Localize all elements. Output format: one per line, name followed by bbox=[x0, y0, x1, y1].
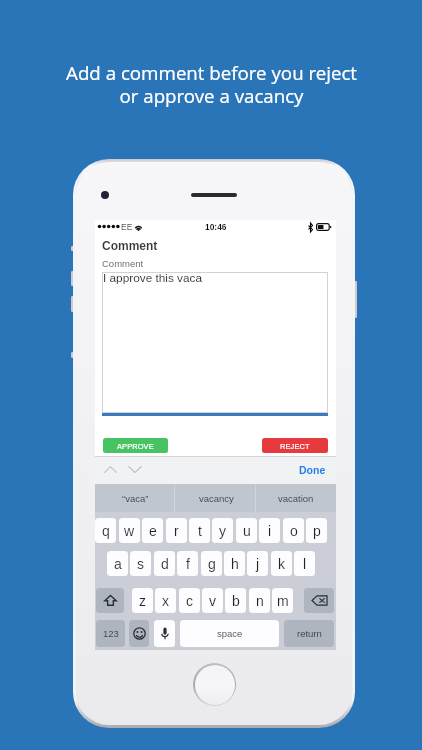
button[interactable]: vacancy bbox=[176, 484, 256, 512]
button[interactable]: f bbox=[177, 551, 198, 576]
button[interactable]: a bbox=[107, 551, 128, 576]
button[interactable]: x bbox=[155, 588, 176, 613]
staticText: x bbox=[162, 593, 169, 609]
button[interactable]: o bbox=[283, 518, 304, 543]
staticText: u bbox=[243, 523, 251, 539]
staticText: space bbox=[217, 628, 243, 639]
staticText: q bbox=[102, 523, 110, 539]
staticText: EE bbox=[121, 222, 133, 231]
button[interactable]: m bbox=[272, 588, 293, 613]
button[interactable]: APPROVE bbox=[103, 438, 168, 453]
button[interactable]: c bbox=[179, 588, 200, 613]
staticText: a bbox=[114, 556, 122, 572]
staticText: vacation bbox=[278, 493, 314, 504]
button[interactable]: Dictation bbox=[154, 620, 175, 647]
staticText: 10:46 bbox=[205, 222, 227, 231]
staticText: p bbox=[313, 523, 321, 539]
button[interactable]: Next field bbox=[125, 463, 145, 476]
button[interactable]: u bbox=[236, 518, 257, 543]
staticText: h bbox=[231, 556, 239, 572]
staticText: Comment bbox=[102, 258, 144, 269]
staticText: z bbox=[139, 593, 146, 609]
button[interactable]: vacation bbox=[256, 484, 336, 512]
staticText: APPROVE bbox=[117, 442, 154, 450]
staticText: 123 bbox=[103, 628, 119, 639]
button[interactable]: y bbox=[212, 518, 233, 543]
staticText: v bbox=[209, 593, 216, 609]
button[interactable]: v bbox=[202, 588, 223, 613]
button[interactable]: REJECT bbox=[262, 438, 328, 453]
button[interactable]: j bbox=[247, 551, 268, 576]
button[interactable]: return bbox=[284, 620, 334, 647]
button[interactable]: 123 bbox=[96, 620, 125, 647]
button[interactable]: n bbox=[249, 588, 270, 613]
button[interactable]: h bbox=[224, 551, 245, 576]
staticText: c bbox=[186, 593, 193, 609]
staticText: k bbox=[278, 556, 285, 572]
staticText: r bbox=[174, 523, 179, 539]
staticText: f bbox=[186, 556, 190, 572]
button[interactable]: Home bbox=[193, 663, 236, 706]
staticText: e bbox=[149, 523, 157, 539]
staticText: d bbox=[161, 556, 169, 572]
button[interactable]: Done bbox=[299, 464, 326, 476]
staticText: s bbox=[137, 556, 144, 572]
staticText: l bbox=[303, 556, 307, 572]
button[interactable]: i bbox=[259, 518, 280, 543]
staticText: Add a comment before you reject or appro… bbox=[66, 60, 357, 109]
button[interactable]: r bbox=[166, 518, 187, 543]
button[interactable]: s bbox=[130, 551, 151, 576]
button[interactable]: Shift bbox=[96, 588, 124, 613]
staticText: Done bbox=[299, 464, 326, 476]
button[interactable]: l bbox=[294, 551, 315, 576]
button[interactable]: space bbox=[180, 620, 279, 647]
button[interactable]: z bbox=[132, 588, 153, 613]
staticText: j bbox=[256, 556, 260, 572]
staticText: return bbox=[297, 628, 322, 639]
button[interactable]: q bbox=[95, 518, 116, 543]
staticText: vacancy bbox=[199, 493, 234, 504]
button[interactable]: w bbox=[119, 518, 140, 543]
staticText: b bbox=[232, 593, 240, 609]
staticText: “vaca” bbox=[122, 493, 149, 504]
staticText: n bbox=[256, 593, 264, 609]
button[interactable]: “vaca” bbox=[95, 484, 176, 512]
staticText: Comment bbox=[102, 239, 158, 252]
button[interactable]: Emoji bbox=[129, 620, 149, 647]
button[interactable]: Backspace bbox=[304, 588, 334, 613]
button[interactable]: Previous field bbox=[101, 463, 120, 476]
staticText: w bbox=[124, 523, 135, 539]
staticText: t bbox=[198, 523, 202, 539]
button[interactable]: p bbox=[306, 518, 327, 543]
button[interactable]: d bbox=[154, 551, 175, 576]
button[interactable]: b bbox=[225, 588, 246, 613]
button[interactable]: k bbox=[271, 551, 292, 576]
staticText: g bbox=[208, 556, 216, 572]
button[interactable]: e bbox=[142, 518, 163, 543]
button[interactable]: g bbox=[201, 551, 222, 576]
staticText: I approve this vaca bbox=[103, 271, 203, 284]
staticText: y bbox=[219, 523, 226, 539]
staticText: m bbox=[277, 593, 289, 609]
staticText: o bbox=[290, 523, 298, 539]
staticText: i bbox=[268, 523, 272, 539]
button[interactable]: t bbox=[189, 518, 210, 543]
staticText: REJECT bbox=[280, 442, 310, 450]
